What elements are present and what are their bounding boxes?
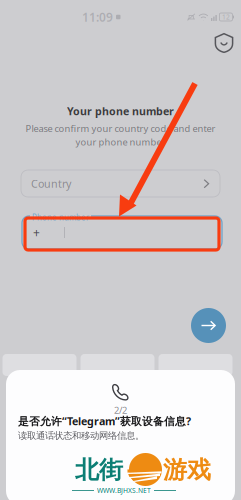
staticText: Please confirm your country code and ent… (25, 122, 215, 135)
button[interactable]: Privacy settings (209, 28, 239, 58)
staticText: WWW.BJHXS.NET (97, 486, 151, 495)
staticText: Country (31, 176, 71, 191)
staticText: your phone number (75, 136, 165, 148)
staticText: 12 (222, 13, 230, 21)
staticText: 游戏 (163, 455, 211, 485)
button[interactable]: Country (21, 170, 220, 197)
staticText: 北街 (75, 455, 123, 485)
staticText: 2/2 (114, 404, 127, 416)
button[interactable]: Next (191, 308, 226, 343)
button[interactable]: + (22, 216, 222, 249)
staticText: 是否允许“Telegram”获取设备信息? (18, 414, 191, 428)
staticText: + (33, 224, 40, 240)
staticText: 读取通话状态和移动网络信息。 (18, 430, 144, 441)
staticText: Your phone number (67, 104, 174, 118)
staticText: 11:09 (82, 9, 113, 25)
staticText: Phone number (32, 212, 89, 223)
